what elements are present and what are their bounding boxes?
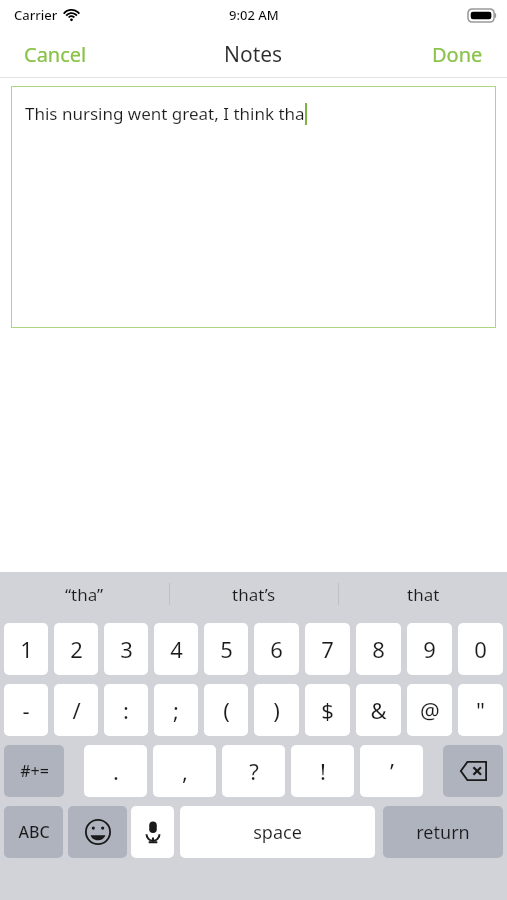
button[interactable]: @ (407, 684, 452, 736)
staticText: that’s (232, 583, 276, 606)
button[interactable]: 1 (4, 623, 48, 675)
staticText: ’ (390, 756, 394, 786)
staticText: return (416, 820, 470, 845)
button[interactable]: 7 (305, 623, 350, 675)
button[interactable]: Backspace (443, 745, 503, 797)
staticText: $ (321, 695, 334, 725)
button[interactable]: space (180, 806, 375, 858)
button[interactable]: ABC (4, 806, 63, 858)
button[interactable]: ! (291, 745, 354, 797)
button[interactable]: 9 (407, 623, 452, 675)
button[interactable]: ? (222, 745, 285, 797)
staticText: that (407, 583, 440, 606)
staticText: #+= (20, 760, 49, 782)
button[interactable]: that (339, 572, 507, 616)
button[interactable]: 8 (356, 623, 401, 675)
staticText: " (476, 695, 485, 725)
staticText: 0 (474, 634, 487, 664)
button[interactable]: 4 (154, 623, 198, 675)
staticText: Notes (224, 40, 283, 69)
staticText: 2 (70, 634, 83, 664)
button[interactable]: “tha” (0, 572, 169, 616)
staticText: : (123, 695, 129, 725)
staticText: 3 (120, 634, 133, 664)
button[interactable]: return (383, 806, 503, 858)
staticText: Cancel (24, 41, 87, 68)
button[interactable]: 2 (54, 623, 98, 675)
button[interactable]: Dictation (131, 806, 174, 858)
staticText: 4 (170, 634, 183, 664)
button[interactable]: . (84, 745, 147, 797)
button[interactable]: This nursing went great, I think tha (11, 86, 496, 328)
staticText: 6 (270, 634, 283, 664)
button[interactable]: that’s (170, 572, 338, 616)
staticText: 9:02 AM (229, 6, 279, 24)
button[interactable]: Emoji (68, 806, 127, 858)
button[interactable]: 6 (254, 623, 299, 675)
button[interactable]: $ (305, 684, 350, 736)
staticText: This nursing went great, I think tha (25, 102, 305, 125)
staticText: ) (273, 695, 280, 725)
staticText: 5 (220, 634, 233, 664)
staticText: 7 (321, 634, 334, 664)
staticText: space (253, 820, 302, 845)
button[interactable]: " (458, 684, 503, 736)
staticText: ; (173, 695, 179, 725)
staticText: & (370, 695, 387, 725)
button[interactable]: ( (204, 684, 248, 736)
staticText: ( (223, 695, 230, 725)
button[interactable]: 5 (204, 623, 248, 675)
staticText: - (22, 695, 30, 725)
staticText: 8 (372, 634, 385, 664)
button[interactable]: 0 (458, 623, 503, 675)
staticText: ABC (18, 821, 50, 843)
button[interactable]: & (356, 684, 401, 736)
button[interactable]: 3 (104, 623, 148, 675)
button[interactable]: ) (254, 684, 299, 736)
button[interactable]: Done (408, 30, 507, 78)
staticText: “tha” (65, 583, 104, 606)
staticText: / (72, 695, 81, 725)
staticText: ? (249, 756, 259, 786)
staticText: Done (432, 41, 483, 68)
staticText: ! (320, 756, 326, 786)
staticText: 1 (20, 634, 33, 664)
button[interactable]: #+= (4, 745, 64, 797)
staticText: Carrier (14, 6, 58, 24)
button[interactable]: / (54, 684, 98, 736)
button[interactable]: - (4, 684, 48, 736)
staticText: . (113, 756, 119, 786)
button[interactable]: Cancel (0, 30, 111, 78)
staticText: , (182, 756, 188, 786)
button[interactable]: , (153, 745, 216, 797)
button[interactable]: : (104, 684, 148, 736)
staticText: 9 (423, 634, 436, 664)
staticText: @ (420, 695, 440, 725)
button[interactable]: ’ (360, 745, 423, 797)
button[interactable]: ; (154, 684, 198, 736)
